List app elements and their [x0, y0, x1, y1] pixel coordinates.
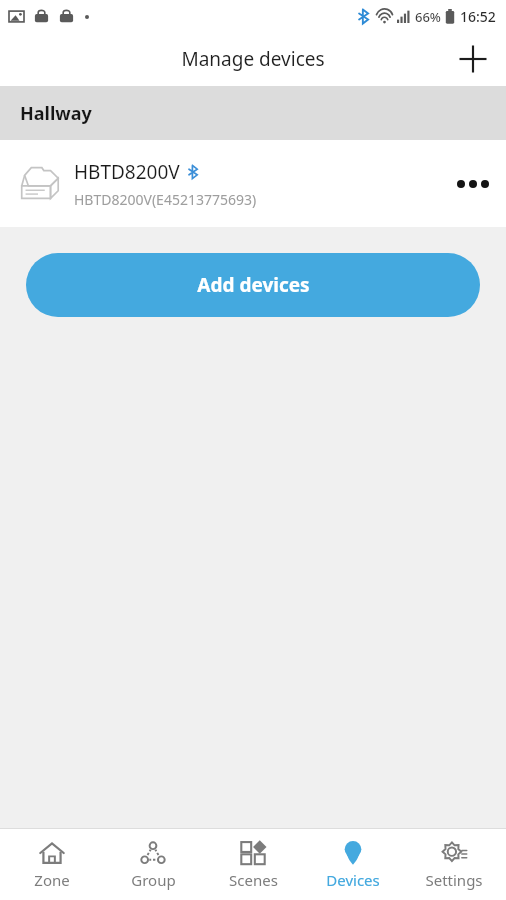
staticText: Add devices [197, 272, 310, 298]
button[interactable]: Add devices [26, 253, 480, 317]
staticText: Group [131, 870, 176, 890]
button[interactable]: Zone [4, 829, 100, 900]
button[interactable]: HBTD8200V [0, 140, 506, 227]
staticText: Scenes [229, 870, 278, 890]
staticText: 16:52 [460, 7, 496, 26]
staticText: Zone [34, 870, 70, 890]
staticText: Hallway [20, 101, 92, 126]
staticText: 66% [415, 8, 441, 26]
staticText: HBTD8200V [74, 159, 180, 185]
staticText: HBTD8200V(E45213775693) [74, 190, 257, 209]
button[interactable]: Devices [305, 829, 401, 900]
button[interactable]: More options [440, 151, 506, 217]
button[interactable]: Add device [448, 34, 498, 84]
staticText: Manage devices [181, 46, 325, 72]
staticText: Settings [425, 870, 483, 890]
staticText: Devices [326, 870, 380, 890]
button[interactable]: Scenes [205, 829, 301, 900]
button[interactable]: Settings [406, 829, 502, 900]
button[interactable]: Group [105, 829, 201, 900]
button[interactable]: Hallway [0, 86, 506, 140]
